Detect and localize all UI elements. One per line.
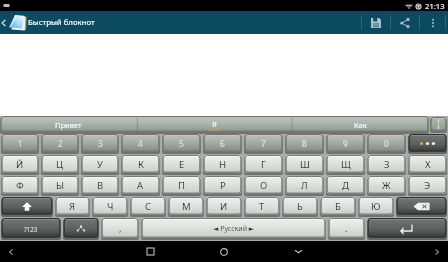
button[interactable]: 1 (1, 134, 39, 153)
button[interactable]: О (244, 176, 283, 195)
button[interactable]: Ю (358, 197, 394, 216)
staticText: 7 (261, 138, 266, 149)
staticText: Т (259, 200, 265, 213)
button[interactable]: . (328, 218, 365, 239)
staticText: П (178, 179, 185, 192)
button[interactable]: 0 (367, 134, 406, 153)
staticText: В (97, 179, 104, 192)
button[interactable]: П (162, 176, 201, 195)
button[interactable]: 2 (41, 134, 79, 153)
staticText: Быстрый блокнот (28, 17, 95, 28)
staticText: Н (219, 158, 227, 171)
button[interactable]: А (121, 176, 160, 195)
button[interactable]: Д (326, 176, 365, 195)
button[interactable]: Ь (282, 197, 318, 216)
staticText: Ы (56, 179, 65, 192)
staticText: У (97, 158, 103, 171)
button[interactable]: 6 (203, 134, 242, 153)
button[interactable]: ◄ Русский ► (141, 218, 326, 239)
button[interactable]: Ц (41, 155, 79, 174)
button[interactable]: Enter (367, 218, 447, 239)
button[interactable]: Ф (1, 176, 39, 195)
button[interactable]: Г (244, 155, 283, 174)
button[interactable]: 4 (121, 134, 160, 153)
button[interactable]: Ж (367, 176, 406, 195)
staticText: Г (261, 158, 266, 171)
button[interactable]: 5 (162, 134, 201, 153)
button[interactable]: Back (0, 11, 7, 34)
staticText: Х (425, 158, 431, 171)
button[interactable]: Р (203, 176, 242, 195)
button[interactable]: М (168, 197, 204, 216)
staticText: 6 (220, 138, 225, 149)
staticText: Д (342, 179, 349, 192)
staticText: Л (301, 179, 308, 192)
button[interactable]: 8 (285, 134, 324, 153)
button[interactable]: Как (292, 116, 429, 133)
button[interactable]: С (130, 197, 166, 216)
button[interactable]: З (367, 155, 406, 174)
staticText: Ш (300, 158, 310, 171)
staticText: 1 (18, 138, 23, 149)
staticText: К (138, 158, 144, 171)
button[interactable]: Home (207, 242, 241, 261)
staticText: Р (220, 179, 226, 192)
button[interactable]: Й (1, 155, 39, 174)
button[interactable]: В (81, 176, 119, 195)
button[interactable]: Hide keyboard (281, 242, 315, 261)
staticText: Ц (56, 158, 64, 171)
button[interactable]: И (206, 197, 242, 216)
button[interactable]: У (81, 155, 119, 174)
button[interactable]: К (121, 155, 160, 174)
button[interactable]: 9 (326, 134, 365, 153)
button[interactable]: More symbols (408, 134, 447, 153)
button[interactable]: More options (420, 11, 445, 34)
staticText: 21:13 (425, 1, 445, 11)
staticText: Я (69, 200, 76, 213)
button[interactable]: Ы (41, 176, 79, 195)
button[interactable]: Ш (285, 155, 324, 174)
button[interactable]: , (101, 218, 139, 239)
button[interactable]: Recent apps (133, 242, 167, 261)
staticText: Щ (341, 158, 351, 171)
button[interactable]: Save (362, 11, 390, 34)
button[interactable]: Shift (1, 197, 53, 216)
staticText: 2 (58, 138, 63, 149)
button[interactable]: Switch keyboard (63, 218, 99, 239)
staticText: Ч (107, 200, 114, 213)
button[interactable]: 7 (244, 134, 283, 153)
staticText: ◄ Русский ► (213, 224, 255, 234)
staticText: Й (16, 158, 24, 171)
button[interactable]: Я (137, 116, 292, 133)
staticText: , (119, 222, 122, 235)
button[interactable]: 3 (81, 134, 119, 153)
button[interactable]: Backspace (396, 197, 447, 216)
button[interactable]: Ч (92, 197, 128, 216)
staticText: . (345, 222, 348, 235)
button[interactable]: Привет (0, 116, 137, 133)
button[interactable]: Щ (326, 155, 365, 174)
button[interactable]: Я (55, 197, 90, 216)
button[interactable]: Е (162, 155, 201, 174)
staticText: С (145, 200, 152, 213)
staticText: Ю (371, 200, 381, 213)
button[interactable]: Т (244, 197, 280, 216)
button[interactable]: Share (391, 11, 419, 34)
button[interactable]: Л (285, 176, 324, 195)
button[interactable]: Back (0, 241, 22, 262)
staticText: Как (354, 120, 367, 130)
staticText: Привет (55, 120, 82, 130)
staticText: М (182, 200, 191, 213)
button[interactable]: Н (203, 155, 242, 174)
button[interactable]: More suggestions (430, 117, 447, 132)
staticText: 0 (384, 138, 389, 149)
button[interactable]: Х (408, 155, 447, 174)
staticText: 8 (302, 138, 307, 149)
button[interactable]: Э (408, 176, 447, 195)
button[interactable]: ?123 (1, 218, 61, 239)
button[interactable]: Б (320, 197, 356, 216)
staticText: А (137, 179, 144, 192)
staticText: 5 (179, 138, 184, 149)
staticText: Ь (297, 200, 303, 213)
button[interactable]: Menu (426, 241, 448, 262)
